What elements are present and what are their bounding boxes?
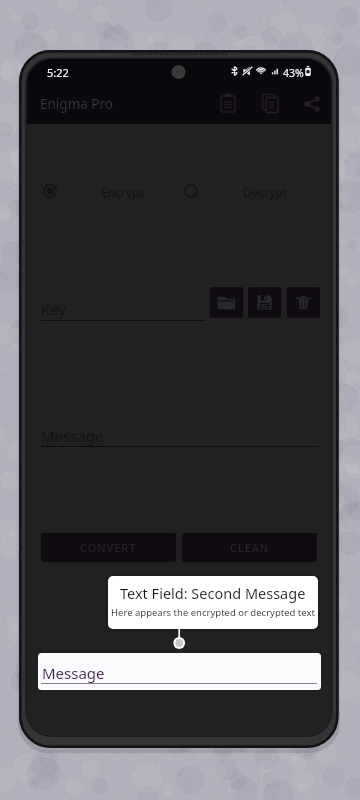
staticText: Message (42, 663, 105, 683)
staticText: Text Field: Second Message (120, 583, 306, 603)
staticText: Encrypt (101, 184, 144, 200)
button[interactable]: CONVERT (41, 533, 176, 562)
button[interactable]: Share (292, 84, 331, 124)
staticText: CONVERT (80, 540, 137, 555)
button[interactable]: CLEAN (182, 533, 317, 562)
staticText: Decrypt (243, 184, 288, 200)
staticText: Enigma Pro (40, 95, 113, 113)
button[interactable]: Open (210, 287, 243, 318)
staticText: Key (41, 299, 67, 319)
staticText: Here appears the encrypted or decrypted … (111, 606, 315, 619)
staticText: CLEAN (230, 540, 270, 555)
staticText: 43% (283, 66, 304, 80)
staticText: Message (41, 426, 104, 446)
button[interactable]: Text Field: Second Message (108, 576, 318, 629)
button[interactable]: Message (38, 653, 321, 690)
staticText: 5:22 (47, 65, 69, 80)
button[interactable]: Copy (251, 84, 291, 124)
button[interactable]: Save (248, 287, 281, 318)
button[interactable]: Paste (208, 84, 248, 124)
button[interactable]: Delete (287, 287, 320, 318)
